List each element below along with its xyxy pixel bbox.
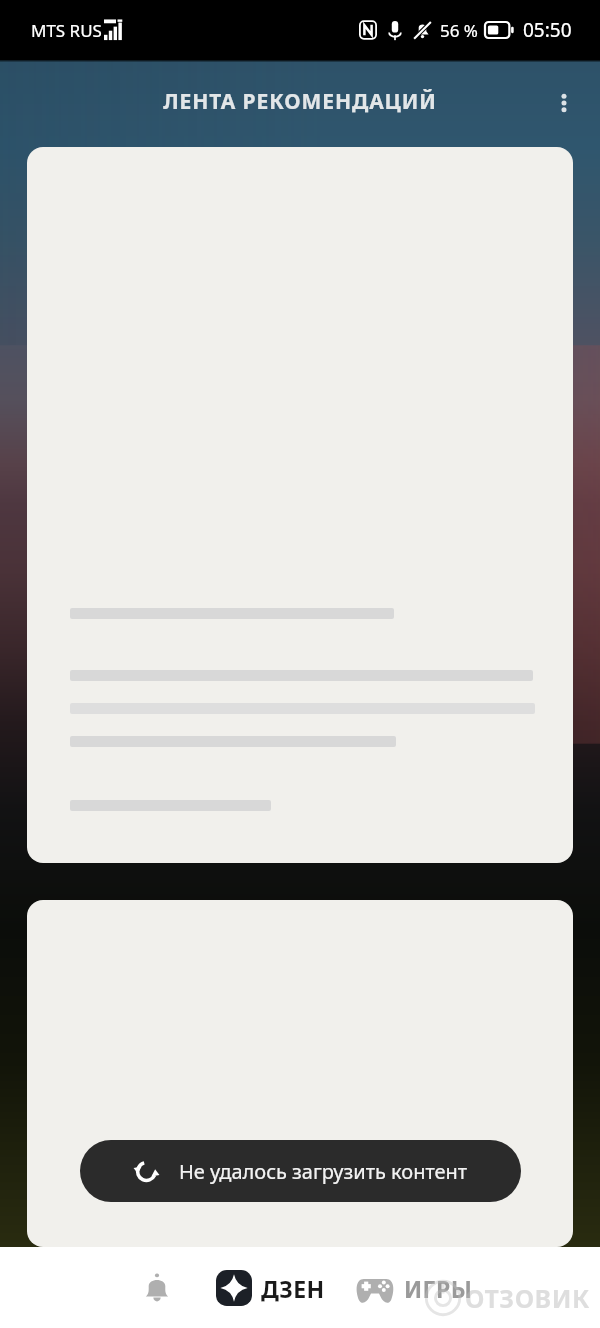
button[interactable]: More options xyxy=(540,79,588,127)
staticText: ЛЕНТА РЕКОМЕНДАЦИЙ xyxy=(0,87,600,116)
button[interactable]: Notifications xyxy=(124,1258,190,1318)
staticText: ИГРЫ xyxy=(404,1273,473,1304)
button[interactable] xyxy=(27,900,573,1247)
button[interactable]: ДЗЕН xyxy=(212,1262,329,1314)
button[interactable] xyxy=(27,147,573,863)
staticText: 56 % xyxy=(440,19,478,42)
staticText: ОТЗОВИК xyxy=(465,1281,590,1315)
button[interactable]: Не удалось загрузить контент xyxy=(80,1140,521,1202)
staticText: Не удалось загрузить контент xyxy=(179,1158,468,1185)
staticText: ДЗЕН xyxy=(261,1273,325,1304)
staticText: MTS RUS xyxy=(31,19,102,42)
button[interactable]: ИГРЫ xyxy=(351,1265,477,1312)
staticText: 05:50 xyxy=(523,17,572,43)
